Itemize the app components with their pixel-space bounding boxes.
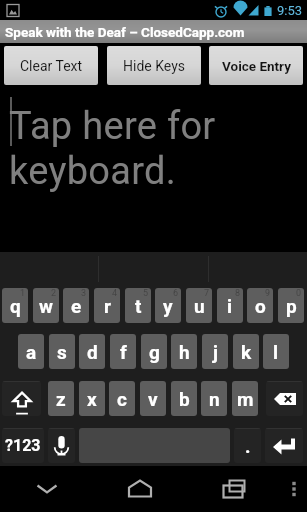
staticText: 3: [81, 288, 87, 299]
staticText: 7: [204, 288, 210, 299]
button[interactable]: u: [186, 288, 212, 323]
button[interactable]: Recent apps: [187, 466, 281, 512]
staticText: 1: [20, 288, 26, 299]
button[interactable]: b: [171, 381, 197, 416]
button[interactable]: o: [247, 288, 273, 323]
staticText: c: [117, 388, 127, 410]
staticText: n: [209, 388, 220, 410]
button[interactable]: f: [110, 334, 136, 369]
button[interactable]: z: [48, 381, 74, 416]
staticText: Tap here for keyboard.: [9, 104, 234, 194]
button[interactable]: s: [49, 334, 75, 369]
button[interactable]: e: [63, 288, 89, 323]
staticText: 9: [265, 288, 271, 299]
staticText: 0: [296, 288, 302, 299]
staticText: m: [237, 388, 254, 410]
staticText: v: [148, 388, 158, 410]
button[interactable]: i: [217, 288, 243, 323]
staticText: ?123: [5, 436, 41, 455]
button[interactable]: Clear Text: [4, 46, 98, 85]
button[interactable]: Voice Entry: [209, 46, 303, 85]
button[interactable]: ?123: [2, 428, 44, 463]
button[interactable]: x: [79, 381, 105, 416]
staticText: r: [104, 295, 111, 317]
staticText: 5: [143, 288, 149, 299]
button[interactable]: q: [2, 288, 28, 323]
staticText: z: [56, 388, 66, 410]
button[interactable]: t: [125, 288, 151, 323]
staticText: g: [149, 341, 160, 363]
staticText: 6: [173, 288, 179, 299]
staticText: t: [135, 295, 142, 317]
staticText: a: [26, 341, 37, 363]
button[interactable]: Hide Keys: [107, 46, 201, 85]
staticText: 4: [112, 288, 118, 299]
button[interactable]: More options: [281, 466, 307, 512]
button[interactable]: Back: [0, 466, 93, 512]
staticText: k: [241, 341, 252, 363]
staticText: 2: [51, 288, 57, 299]
staticText: 8: [235, 288, 241, 299]
staticText: w: [39, 295, 53, 317]
button[interactable]: Enter: [265, 428, 303, 463]
staticText: s: [57, 341, 67, 363]
button[interactable]: j: [202, 334, 228, 369]
button[interactable]: .: [234, 428, 261, 463]
staticText: o: [255, 295, 266, 317]
button[interactable]: Delete: [266, 381, 303, 416]
button[interactable]: g: [141, 334, 167, 369]
staticText: b: [179, 388, 190, 410]
staticText: 9:53: [277, 3, 303, 18]
staticText: i: [227, 295, 233, 317]
staticText: Voice Entry: [222, 58, 291, 74]
staticText: u: [194, 295, 205, 317]
staticText: h: [179, 341, 190, 363]
button[interactable]: m: [232, 381, 258, 416]
staticText: Clear Text: [20, 58, 83, 74]
button[interactable]: k: [233, 334, 259, 369]
button[interactable]: v: [140, 381, 166, 416]
button[interactable]: n: [201, 381, 227, 416]
button[interactable]: r: [94, 288, 120, 323]
staticText: Speak with the Deaf – ClosedCapp.com: [5, 24, 245, 40]
button[interactable]: Shift: [2, 381, 41, 416]
staticText: f: [120, 341, 127, 363]
button[interactable]: h: [171, 334, 197, 369]
staticText: .: [245, 435, 251, 457]
staticText: d: [87, 341, 98, 363]
button[interactable]: p: [278, 288, 304, 323]
button[interactable]: Home: [93, 466, 187, 512]
staticText: j: [213, 341, 218, 363]
staticText: l: [273, 341, 279, 363]
staticText: y: [163, 295, 173, 317]
staticText: p: [286, 295, 297, 317]
staticText: Hide Keys: [123, 58, 185, 74]
staticText: e: [71, 295, 82, 317]
button[interactable]: Voice input: [48, 428, 75, 463]
button[interactable]: y: [155, 288, 181, 323]
staticText: q: [10, 295, 21, 317]
button[interactable]: w: [33, 288, 59, 323]
staticText: x: [87, 388, 97, 410]
button[interactable]: d: [79, 334, 105, 369]
button[interactable]: l: [263, 334, 289, 369]
button[interactable]: c: [109, 381, 135, 416]
button[interactable]: a: [18, 334, 44, 369]
